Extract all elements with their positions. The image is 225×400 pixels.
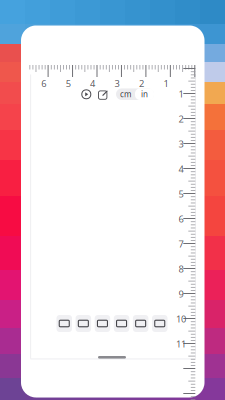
staticText: 2: [178, 113, 183, 125]
staticText: 1: [178, 88, 183, 100]
button[interactable]: [56, 315, 72, 332]
staticText: in: [141, 89, 148, 99]
staticText: 5: [66, 77, 71, 90]
button[interactable]: [114, 315, 129, 332]
staticText: 7: [178, 238, 183, 250]
staticText: 10: [176, 313, 186, 325]
staticText: 4: [90, 77, 95, 90]
button[interactable]: cm: [116, 88, 135, 100]
staticText: 6: [178, 213, 183, 225]
staticText: 9: [178, 288, 183, 300]
staticText: 3: [178, 138, 183, 150]
staticText: 11: [176, 338, 186, 350]
button[interactable]: Reset: [81, 89, 91, 99]
staticText: 4: [178, 163, 183, 175]
button[interactable]: Edit: [98, 89, 108, 99]
staticText: 1: [163, 77, 168, 90]
staticText: 2: [139, 77, 144, 90]
staticText: 5: [178, 188, 183, 200]
staticText: 6: [41, 77, 46, 90]
button[interactable]: [95, 315, 110, 332]
button[interactable]: [76, 315, 91, 332]
staticText: 3: [115, 77, 120, 90]
button[interactable]: [152, 315, 167, 332]
staticText: cm: [120, 89, 131, 99]
button[interactable]: [133, 315, 148, 332]
button[interactable]: in: [135, 88, 154, 100]
staticText: 8: [178, 263, 183, 275]
